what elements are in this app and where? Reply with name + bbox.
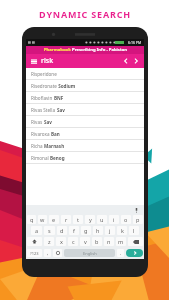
button[interactable]: m xyxy=(116,237,126,246)
button[interactable]: w xyxy=(38,215,47,224)
button[interactable]: Backspace xyxy=(128,237,143,246)
button[interactable]: Richa xyxy=(26,140,144,152)
staticText: Sav xyxy=(44,119,52,125)
staticText: Sav xyxy=(57,107,65,113)
button[interactable]: g xyxy=(81,226,91,235)
staticText: v xyxy=(84,238,87,245)
button[interactable]: . xyxy=(117,249,124,257)
staticText: Rimonal xyxy=(31,155,50,161)
button[interactable]: o xyxy=(121,215,131,224)
staticText: s xyxy=(48,227,51,234)
button[interactable]: e xyxy=(49,215,59,224)
staticText: Ban xyxy=(51,131,60,137)
staticText: English xyxy=(83,251,97,256)
button[interactable]: a xyxy=(31,226,42,235)
staticText: c xyxy=(72,238,75,245)
button[interactable]: ?123 xyxy=(27,249,42,257)
staticText: o xyxy=(124,216,128,223)
button[interactable]: u xyxy=(97,215,107,224)
button[interactable]: b xyxy=(92,237,102,246)
staticText: . xyxy=(120,250,122,257)
staticText: , xyxy=(47,250,49,257)
staticText: i xyxy=(113,216,115,223)
staticText: j xyxy=(109,227,111,234)
staticText: Rivas xyxy=(31,119,44,125)
button[interactable]: Rimonal xyxy=(26,152,144,164)
staticText: g xyxy=(84,227,88,234)
staticText: Benog xyxy=(50,155,65,161)
staticText: 6:16 PM xyxy=(128,40,142,45)
button[interactable]: Next xyxy=(131,56,141,66)
button[interactable]: f xyxy=(69,226,79,235)
staticText: x xyxy=(60,238,63,245)
button[interactable]: , xyxy=(44,249,51,257)
staticText: Riboflavin xyxy=(31,95,54,101)
button[interactable]: English xyxy=(64,249,115,257)
button[interactable]: Risedronate xyxy=(26,80,144,92)
button[interactable]: Emoji xyxy=(53,249,62,257)
staticText: risk xyxy=(41,56,54,66)
button[interactable]: Rivaroxa xyxy=(26,128,144,140)
staticText: p xyxy=(136,216,140,223)
staticText: BNF xyxy=(54,95,64,101)
staticText: z xyxy=(48,238,51,245)
staticText: e xyxy=(52,216,56,223)
button[interactable]: y xyxy=(85,215,95,224)
button[interactable]: Menu xyxy=(29,56,39,66)
staticText: a xyxy=(35,227,39,234)
button[interactable]: v xyxy=(80,237,90,246)
staticText: t xyxy=(77,216,79,223)
staticText: k xyxy=(121,227,124,234)
button[interactable]: k xyxy=(117,226,127,235)
button[interactable]: z xyxy=(44,237,54,246)
staticText: u xyxy=(100,216,104,223)
button[interactable]: t xyxy=(73,215,83,224)
button[interactable]: x xyxy=(56,237,66,246)
staticText: Risperidone xyxy=(31,71,57,77)
button[interactable]: Search xyxy=(126,249,143,257)
button[interactable]: s xyxy=(44,226,55,235)
button[interactable]: Shift xyxy=(27,237,42,246)
button[interactable]: i xyxy=(109,215,119,224)
staticText: Richa xyxy=(31,143,44,149)
staticText: Risedronate xyxy=(31,83,57,89)
staticText: Marnash xyxy=(44,143,65,149)
staticText: r xyxy=(65,216,68,223)
button[interactable]: Previous xyxy=(121,56,131,66)
button[interactable]: Riboflavin xyxy=(26,92,144,104)
button[interactable]: h xyxy=(93,226,103,235)
staticText: Pharmabook xyxy=(44,47,71,53)
staticText: Rivas Stella xyxy=(31,107,57,113)
button[interactable]: Risperidone xyxy=(26,68,144,80)
button[interactable]: Voice input xyxy=(132,206,140,214)
staticText: ?123 xyxy=(30,251,39,256)
staticText: f xyxy=(73,227,75,234)
staticText: DYNAMIC SEARCH xyxy=(39,8,131,20)
staticText: l xyxy=(133,227,135,234)
button[interactable]: d xyxy=(57,226,67,235)
staticText: d xyxy=(60,227,64,234)
staticText: b xyxy=(95,238,99,245)
staticText: m xyxy=(118,238,124,245)
button[interactable]: p xyxy=(133,215,143,224)
staticText: Rivaroxa xyxy=(31,131,51,137)
button[interactable]: r xyxy=(61,215,71,224)
button[interactable]: c xyxy=(68,237,78,246)
staticText: h xyxy=(96,227,100,234)
staticText: w xyxy=(40,216,45,223)
staticText: q xyxy=(30,216,34,223)
staticText: Sodium xyxy=(57,83,76,89)
button[interactable]: q xyxy=(27,215,36,224)
staticText: n xyxy=(107,238,111,245)
button[interactable]: l xyxy=(129,226,139,235)
staticText: Prescribing Info - Pakistan xyxy=(71,47,127,53)
button[interactable]: Rivas xyxy=(26,116,144,128)
button[interactable]: n xyxy=(104,237,114,246)
button[interactable]: j xyxy=(105,226,115,235)
button[interactable]: Rivas Stella xyxy=(26,104,144,116)
staticText: y xyxy=(89,216,92,223)
